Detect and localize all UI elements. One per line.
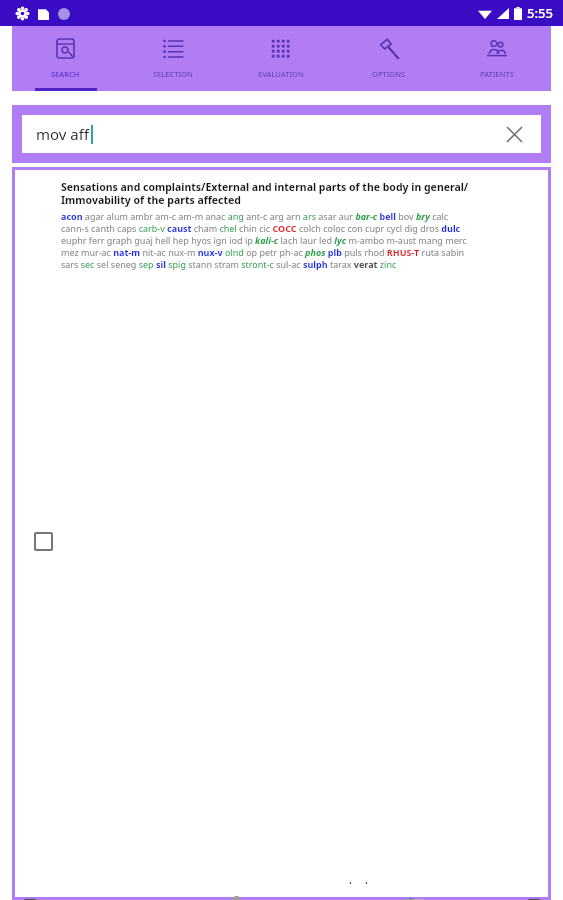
staticText: euphr ferr graph guaj hell hep hyos ign … (61, 234, 467, 246)
staticText: mez mur-ac nat-m nit-ac nux-m nux-v olnd… (61, 246, 465, 258)
staticText: sars sec sel seneg sep sil spig stann st… (61, 258, 397, 270)
staticText: 5:55 (527, 4, 553, 22)
button[interactable]: PATIENTS (443, 26, 551, 88)
button[interactable]: OPTIONS (335, 26, 443, 88)
staticText: mov aff (36, 124, 90, 144)
staticText: Sensations and complaints/External and i… (61, 180, 469, 207)
staticText: OPTIONS (372, 69, 406, 79)
button[interactable]: SEARCH (12, 26, 119, 88)
staticText: EVALUATION (258, 69, 304, 79)
staticText: SEARCH (51, 69, 80, 79)
button[interactable]: SELECTION (119, 26, 227, 88)
staticText: acon agar alum ambr am-c am-m anac ang a… (61, 210, 449, 222)
button[interactable]: EVALUATION (227, 26, 335, 88)
staticText: PATIENTS (480, 69, 514, 79)
button[interactable]: Clear search (501, 121, 527, 147)
staticText: cann-s canth caps carb-v caust cham chel… (61, 222, 461, 234)
button[interactable]: Select rubric (34, 532, 53, 551)
staticText: SELECTION (153, 69, 193, 79)
button[interactable]: Select rubric (15, 180, 548, 881)
